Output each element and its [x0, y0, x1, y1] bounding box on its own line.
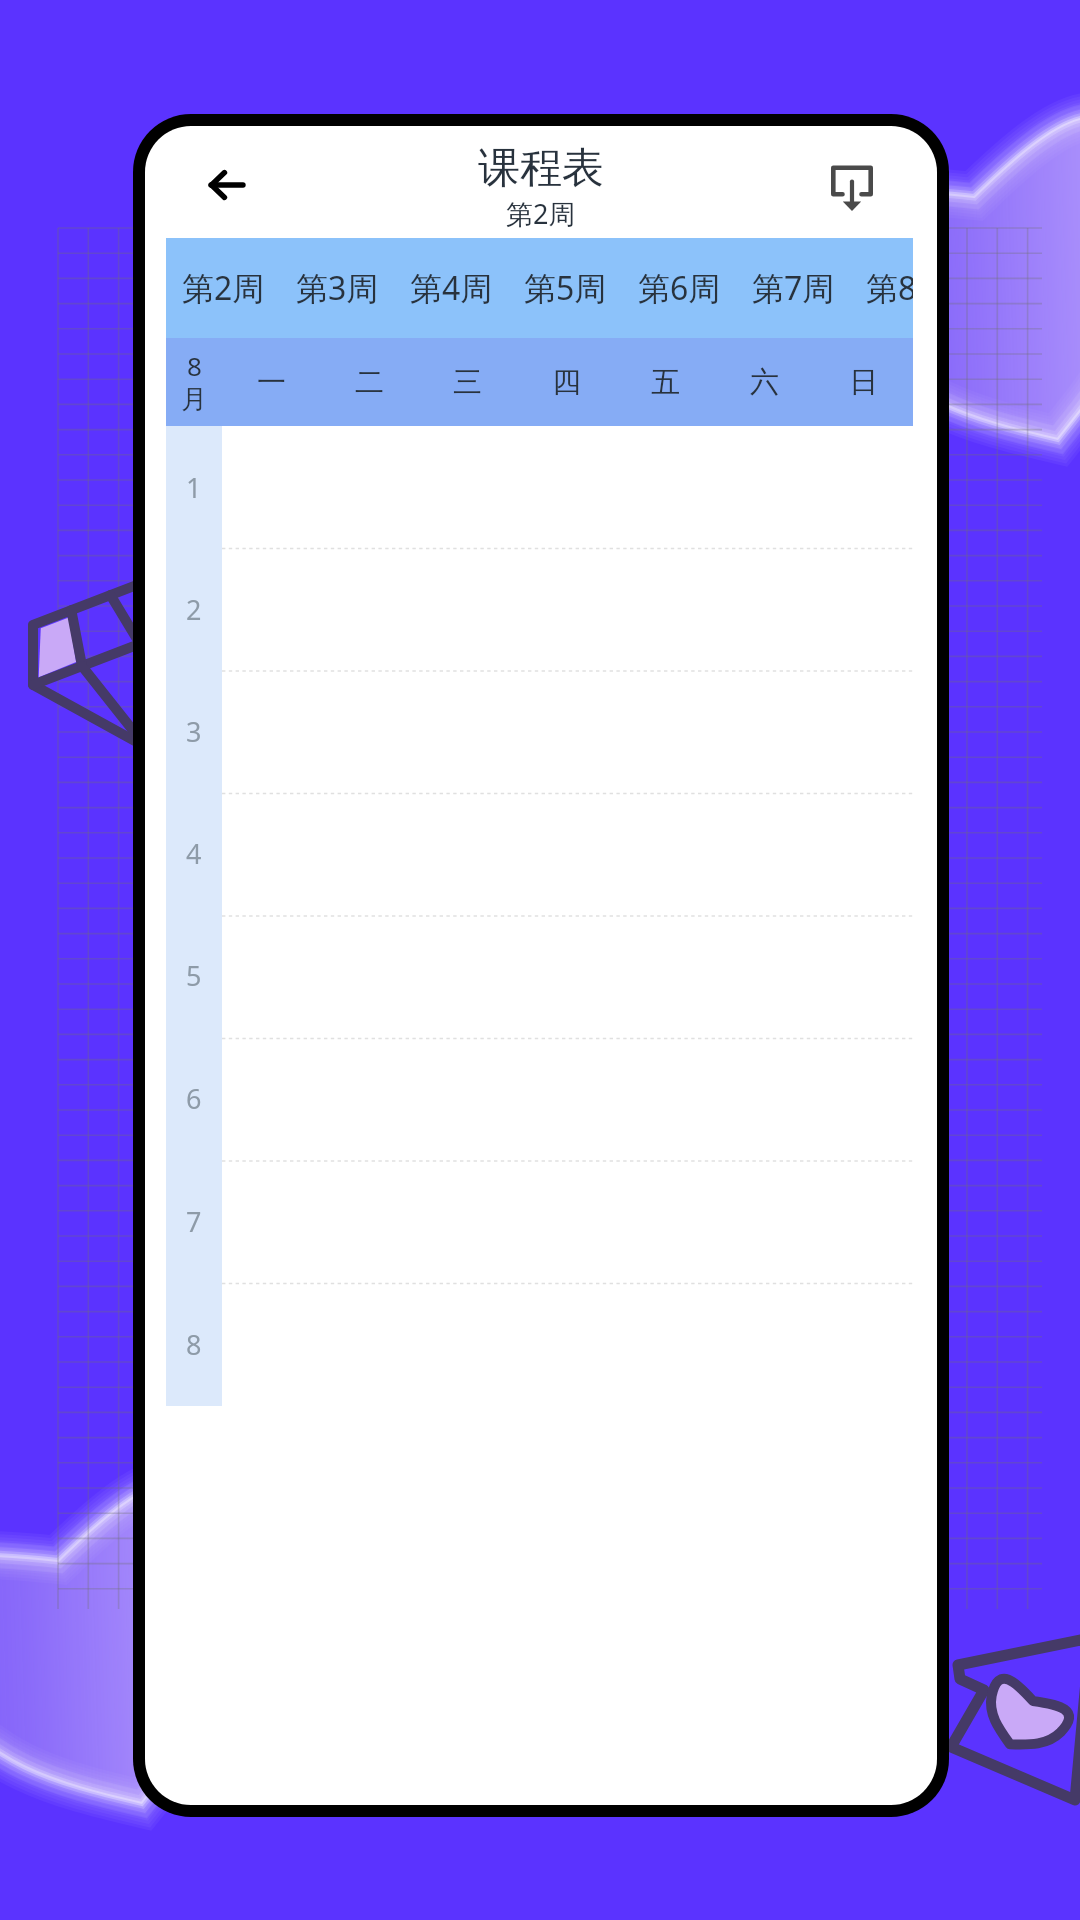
button[interactable]: 第2周 — [166, 238, 280, 338]
staticText: 日 — [849, 364, 878, 401]
staticText: 6 — [186, 1080, 202, 1117]
button[interactable]: 四 — [517, 338, 616, 426]
button[interactable]: 六 — [715, 338, 814, 426]
button[interactable]: 日 — [814, 338, 913, 426]
staticText: 7 — [186, 1203, 202, 1240]
staticText: 一 — [257, 364, 286, 401]
staticText: 8 — [186, 1326, 202, 1363]
button[interactable]: 第8周 — [850, 238, 913, 338]
staticText: 月 — [181, 383, 207, 416]
staticText: 课程表 — [478, 142, 604, 195]
staticText: 第8周 — [866, 266, 913, 310]
staticText: 8 — [187, 348, 202, 383]
button[interactable]: 第6周 — [622, 238, 736, 338]
button[interactable]: 第4周 — [394, 238, 508, 338]
button[interactable]: 三 — [418, 338, 517, 426]
button[interactable]: 第3周 — [280, 238, 394, 338]
staticText: 1 — [186, 469, 202, 506]
button[interactable]: Back — [189, 147, 265, 223]
staticText: 五 — [651, 364, 680, 401]
staticText: 第3周 — [296, 266, 379, 310]
button[interactable]: 五 — [616, 338, 715, 426]
staticText: 二 — [355, 364, 384, 401]
button[interactable]: 第5周 — [508, 238, 622, 338]
staticText: 三 — [453, 364, 482, 401]
staticText: 四 — [552, 364, 581, 401]
staticText: 第2周 — [182, 266, 265, 310]
staticText: 第7周 — [752, 266, 835, 310]
staticText: 第4周 — [410, 266, 493, 310]
staticText: 第2周 — [506, 195, 576, 232]
staticText: 六 — [750, 364, 779, 401]
staticText: 5 — [186, 957, 202, 994]
button[interactable]: 第7周 — [736, 238, 850, 338]
staticText: 第6周 — [638, 266, 721, 310]
staticText: 第5周 — [524, 266, 607, 310]
button[interactable]: 二 — [320, 338, 418, 426]
staticText: 4 — [186, 835, 202, 872]
button[interactable]: Import schedule — [814, 143, 890, 219]
staticText: 2 — [186, 591, 202, 628]
staticText: 3 — [186, 713, 202, 750]
button[interactable]: 一 — [222, 338, 320, 426]
